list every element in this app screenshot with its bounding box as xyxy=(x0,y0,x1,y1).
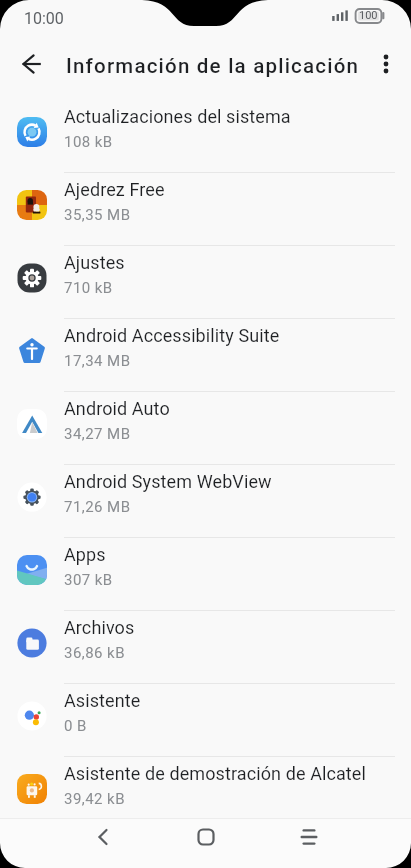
button[interactable]: Actualizaciones del sistema xyxy=(0,100,411,173)
staticText: 34,27 MB xyxy=(64,425,131,443)
staticText: 307 kB xyxy=(64,571,113,589)
staticText: 10:00 xyxy=(24,9,64,28)
button[interactable] xyxy=(257,818,360,868)
button[interactable]: Android Auto xyxy=(0,392,411,465)
staticText: 710 kB xyxy=(64,279,113,297)
staticText: Actualizaciones del sistema xyxy=(64,106,291,127)
button[interactable] xyxy=(362,40,410,88)
button[interactable] xyxy=(51,818,154,868)
staticText: Información de la aplicación xyxy=(66,54,360,78)
button[interactable]: Android System WebView xyxy=(0,465,411,538)
button[interactable]: Asistente xyxy=(0,684,411,757)
staticText: Android Auto xyxy=(64,398,170,419)
button[interactable] xyxy=(8,40,56,88)
staticText: 108 kB xyxy=(64,133,113,151)
staticText: Android Accessibility Suite xyxy=(64,325,280,346)
button[interactable]: Archivos xyxy=(0,611,411,684)
button[interactable]: Apps xyxy=(0,538,411,611)
staticText: Archivos xyxy=(64,617,135,638)
staticText: Ajustes xyxy=(64,252,125,273)
button[interactable]: Asistente de demostración de Alcatel xyxy=(0,757,411,830)
staticText: Asistente xyxy=(64,690,141,711)
staticText: 39,42 kB xyxy=(64,790,125,808)
staticText: 36,86 kB xyxy=(64,644,125,662)
staticText: Android System WebView xyxy=(64,471,272,492)
staticText: 71,26 MB xyxy=(64,498,131,516)
button[interactable]: Android Accessibility Suite xyxy=(0,319,411,392)
staticText: Apps xyxy=(64,544,106,565)
staticText: Asistente de demostración de Alcatel xyxy=(64,763,366,784)
button[interactable]: Ajedrez Free xyxy=(0,173,411,246)
staticText: 17,34 MB xyxy=(64,352,131,370)
staticText: 100 xyxy=(359,9,378,22)
button[interactable]: Ajustes xyxy=(0,246,411,319)
staticText: 35,35 MB xyxy=(64,206,131,224)
button[interactable] xyxy=(154,818,257,868)
staticText: Ajedrez Free xyxy=(64,179,165,200)
staticText: 0 B xyxy=(64,717,87,735)
